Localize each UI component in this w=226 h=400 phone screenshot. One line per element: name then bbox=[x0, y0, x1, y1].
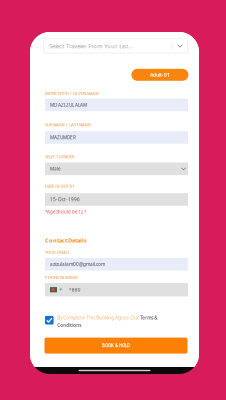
button[interactable]: BOOK & HOLD bbox=[44, 338, 187, 354]
staticText: *Age Should be 12+ bbox=[45, 209, 87, 215]
staticText: Terms & bbox=[140, 315, 157, 321]
staticText: SELECT GENDER bbox=[45, 154, 75, 160]
staticText: SURNAME / LAST NAME bbox=[45, 122, 91, 128]
staticText: Contact Details bbox=[45, 237, 87, 244]
staticText: ENTER FIRST / GIVEN NAME bbox=[45, 90, 99, 96]
staticText: MAZUMDER bbox=[50, 134, 76, 141]
staticText: Male bbox=[50, 166, 61, 172]
staticText: By Complete This Booking Agree Our bbox=[57, 315, 140, 321]
staticText: MD AZIZUL ALAM bbox=[50, 102, 87, 108]
button[interactable]: Agree to terms and conditions bbox=[45, 316, 54, 324]
staticText: azizulalam00@gmail.com bbox=[50, 261, 105, 267]
staticText: Select Traveler From Your List... bbox=[49, 42, 134, 50]
staticText: DATE OF BIRTH bbox=[45, 183, 74, 189]
button[interactable]: Adult-01 bbox=[131, 69, 188, 81]
staticText: Adult-01 bbox=[150, 71, 170, 78]
staticText: +880 bbox=[69, 286, 81, 293]
staticText: Conditions bbox=[57, 322, 81, 328]
staticText: 15-Oct-1996 bbox=[50, 196, 80, 203]
staticText: BOOK & HOLD bbox=[102, 343, 130, 348]
button[interactable]: Select Traveler From Your List... bbox=[44, 39, 188, 53]
staticText: YOUR EMAIL bbox=[45, 249, 70, 255]
staticText: PHONE NUMBER bbox=[45, 274, 78, 280]
